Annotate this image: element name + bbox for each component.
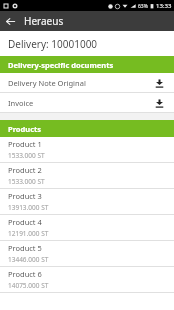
- button[interactable]: Back: [0, 11, 20, 31]
- staticText: Product 2: [8, 165, 42, 175]
- staticText: Product 5: [8, 243, 42, 253]
- staticText: Delivery Note Original: [8, 78, 152, 88]
- staticText: Product 3: [8, 191, 42, 201]
- staticText: 14075.000 ST: [8, 281, 49, 290]
- button[interactable]: Product 3: [0, 189, 174, 214]
- staticText: 13:33: [156, 2, 172, 10]
- button[interactable]: Product 4: [0, 215, 174, 240]
- button[interactable]: Product 6: [0, 267, 174, 292]
- staticText: Delivery-specific documents: [8, 60, 114, 70]
- button[interactable]: Product 5: [0, 241, 174, 266]
- staticText: Product 6: [8, 269, 42, 279]
- staticText: 13913.000 ST: [8, 203, 49, 212]
- staticText: Delivery: 10001000: [8, 37, 98, 51]
- staticText: 1533.000 ST: [8, 151, 45, 160]
- button[interactable]: Download Delivery Note Original: [152, 76, 166, 90]
- staticText: Heraeus: [24, 14, 64, 28]
- staticText: 1533.000 ST: [8, 177, 45, 186]
- button[interactable]: Product 2: [0, 163, 174, 188]
- staticText: Product 1: [8, 139, 42, 149]
- staticText: Product 4: [8, 217, 42, 227]
- button[interactable]: Invoice: [0, 93, 174, 112]
- staticText: Products: [8, 124, 42, 134]
- button[interactable]: Download Invoice: [152, 96, 166, 110]
- staticText: 63%: [138, 3, 148, 10]
- button[interactable]: Delivery Note Original: [0, 73, 174, 92]
- staticText: 12191.000 ST: [8, 229, 49, 238]
- button[interactable]: Product 1: [0, 137, 174, 162]
- staticText: 13446.000 ST: [8, 255, 49, 264]
- staticText: Invoice: [8, 98, 152, 108]
